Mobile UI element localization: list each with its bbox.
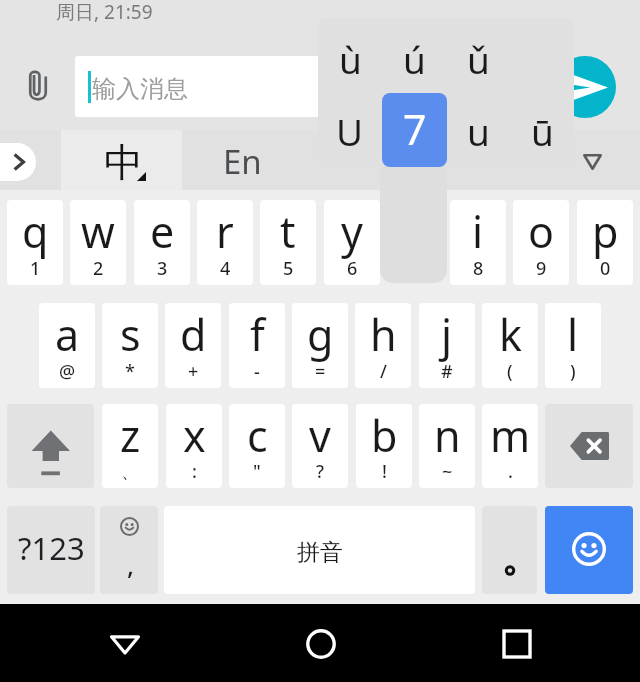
staticText: 6 (347, 256, 358, 281)
staticText: 2 (93, 256, 104, 281)
staticText: c (247, 406, 268, 465)
staticText: . (508, 459, 513, 484)
staticText: e (150, 202, 175, 261)
button[interactable]: o (513, 200, 569, 285)
button[interactable]: En (182, 130, 303, 190)
staticText: : (192, 459, 197, 484)
staticText: g (307, 305, 334, 364)
staticText: 5 (283, 256, 294, 281)
staticText: En (223, 139, 262, 184)
staticText: 1 (30, 256, 41, 281)
staticText: , (127, 547, 135, 582)
button[interactable]: ù (318, 18, 382, 92)
staticText: ǔ (467, 34, 490, 84)
staticText: a (55, 305, 80, 364)
button[interactable]: Back (97, 616, 153, 672)
button[interactable]: h (355, 303, 411, 388)
button[interactable]: Shift (7, 404, 94, 488)
button[interactable]: c (229, 404, 285, 488)
button[interactable]: ǔ (446, 18, 510, 92)
button[interactable]: t (260, 200, 316, 285)
button[interactable]: b (356, 404, 412, 488)
button[interactable]: Home (293, 616, 349, 672)
staticText: ( (507, 359, 513, 384)
button[interactable]: f (229, 303, 285, 388)
staticText: 3 (157, 256, 168, 281)
staticText: d (180, 305, 207, 364)
staticText: i (472, 202, 484, 261)
button[interactable]: ū (510, 92, 574, 167)
button[interactable]: 输入消息 (75, 56, 572, 117)
button[interactable]: v (292, 404, 348, 488)
staticText: ù (339, 34, 362, 84)
staticText: 9 (536, 256, 547, 281)
staticText: - (254, 359, 260, 384)
staticText: # (441, 359, 453, 384)
button[interactable]: n (419, 404, 475, 488)
button[interactable]: Send (554, 56, 616, 118)
button[interactable]: Emoji keyboard (545, 506, 633, 594)
staticText: r (216, 202, 234, 261)
button[interactable]: i (450, 200, 506, 285)
button[interactable]: e (134, 200, 190, 285)
button[interactable]: s (102, 303, 158, 388)
button[interactable]: k (482, 303, 538, 388)
button[interactable]: l (545, 303, 601, 388)
staticText: 、 (121, 461, 139, 484)
staticText: u (467, 106, 490, 156)
staticText: 输入消息 (92, 74, 188, 104)
button[interactable]: r (197, 200, 253, 285)
staticText: q (22, 202, 49, 261)
button[interactable]: d (165, 303, 221, 388)
staticText: " (253, 459, 261, 484)
button[interactable]: U (318, 92, 382, 167)
staticText: @ (59, 359, 76, 384)
button[interactable]: Hide keyboard (564, 130, 622, 190)
button[interactable]: 拼音 (164, 506, 475, 594)
button[interactable]: p (577, 200, 633, 285)
staticText: h (370, 305, 397, 364)
staticText: = (315, 359, 326, 384)
button[interactable]: 7 (382, 92, 446, 167)
staticText: f (250, 305, 265, 364)
staticText: v (309, 406, 331, 465)
staticText: 7 (403, 101, 427, 157)
button[interactable]: a (39, 303, 95, 388)
staticText: ú (403, 34, 426, 84)
button[interactable]: g (292, 303, 348, 388)
staticText: n (434, 406, 461, 465)
button[interactable]: u (446, 92, 510, 167)
staticText: ) (570, 359, 576, 384)
button[interactable]: Expand toolbar (0, 143, 36, 181)
staticText: 7 (403, 106, 425, 156)
staticText: * (125, 359, 135, 384)
button[interactable]: 中 (61, 130, 182, 190)
button[interactable]: j (419, 303, 475, 388)
button[interactable]: q (7, 200, 63, 285)
button[interactable] (482, 506, 537, 594)
staticText: ū (531, 106, 554, 156)
button[interactable]: Attach file (12, 60, 64, 112)
staticText: t (280, 202, 296, 261)
button[interactable]: z (102, 404, 158, 488)
staticText: 0 (600, 256, 611, 281)
button[interactable]: x (166, 404, 222, 488)
button[interactable]: ú (382, 18, 446, 92)
button[interactable]: w (70, 200, 126, 285)
staticText: x (183, 406, 206, 465)
button[interactable]: m (482, 404, 538, 488)
staticText: ~ (442, 459, 453, 484)
button[interactable]: ?123 (7, 506, 95, 594)
staticText: y (341, 202, 363, 261)
staticText: j (441, 305, 453, 364)
staticText: ? (316, 459, 325, 484)
button[interactable]: Emoji and comma (100, 506, 158, 594)
staticText: w (81, 202, 115, 261)
button[interactable]: Recents (489, 616, 545, 672)
staticText: m (490, 406, 531, 465)
button[interactable]: y (324, 200, 380, 285)
staticText: o (528, 202, 555, 261)
staticText: l (567, 305, 579, 364)
button[interactable]: 7 (382, 93, 447, 167)
button[interactable]: Backspace (545, 404, 633, 488)
